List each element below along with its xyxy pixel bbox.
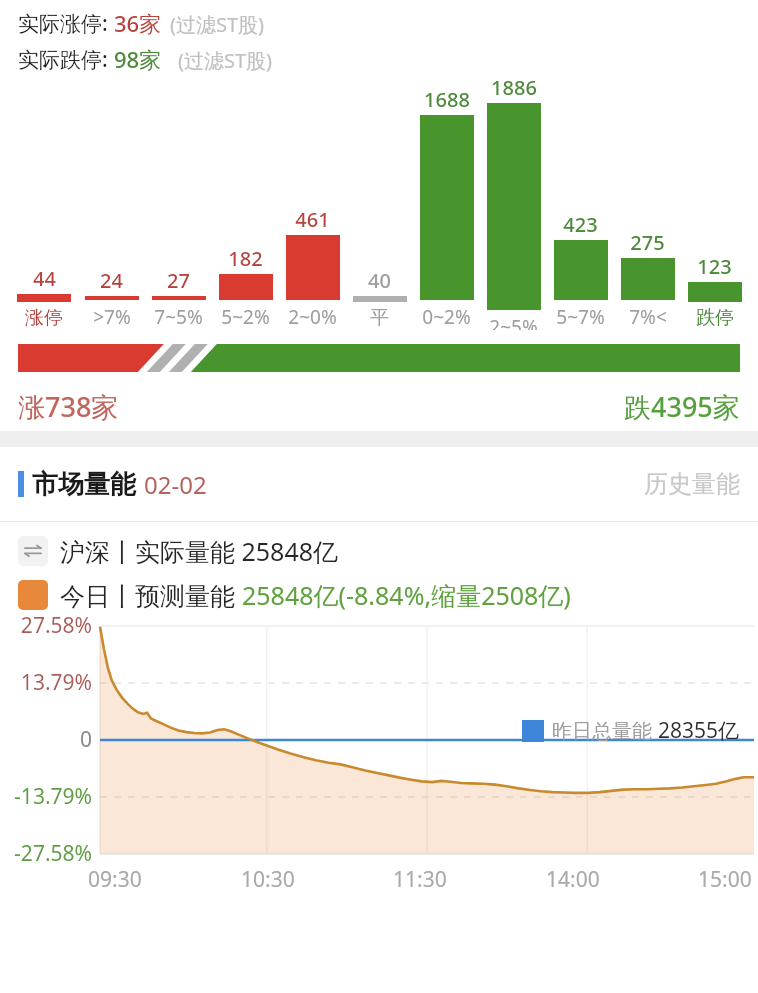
button[interactable] [18,344,740,372]
button[interactable]: 423 [547,211,614,330]
staticText: 123 [697,253,732,280]
staticText: 昨日总量能 [552,717,658,744]
staticText: -13.79% [14,782,92,811]
staticText: 跌停 [696,306,734,330]
staticText: 5~2% [221,304,270,330]
button[interactable]: 275 [614,229,681,330]
button[interactable]: 切换 [18,534,339,568]
staticText: 平 [370,306,389,330]
staticText: 1688 [424,86,470,113]
button[interactable]: 历史量能 [644,469,740,499]
staticText: 5~7% [556,304,605,330]
staticText: 市场量能 [32,468,136,501]
button[interactable]: 182 [212,245,279,330]
button[interactable]: 1886 [480,74,547,330]
button[interactable]: 461 [279,206,346,330]
staticText: 实际跌停: [18,45,108,74]
button[interactable]: 今日丨预测量能 [18,578,571,612]
staticText: 98家 [114,44,162,74]
staticText: 423 [563,211,598,238]
staticText: 历史量能 [644,469,740,499]
staticText: 14:00 [546,865,600,894]
staticText: 13.79% [20,668,92,697]
staticText: 涨停 [25,306,63,330]
button[interactable]: 123 [681,253,748,330]
staticText: 36家 [114,8,162,38]
staticText: 09:30 [88,865,142,894]
staticText: 27 [167,267,190,294]
button[interactable]: 1688 [413,86,480,330]
staticText: 275 [630,229,665,256]
staticText: 02-02 [144,468,207,501]
staticText: 1886 [491,74,537,101]
staticText: (过滤ST股) [170,11,265,38]
staticText: 2~5% [489,314,538,330]
button[interactable]: 24 [78,267,145,330]
staticText: 27.58% [20,611,92,640]
staticText: 涨738家 [18,388,119,425]
staticText: >7% [93,304,131,330]
staticText: 跌4395家 [624,388,740,425]
staticText: 10:30 [241,865,295,894]
staticText: -27.58% [14,839,92,868]
staticText: 实际涨停: [18,9,108,38]
staticText: (过滤ST股) [178,47,273,74]
staticText: 今日丨预测量能 [60,578,242,612]
button[interactable]: 44 [10,265,78,330]
staticText: 0~2% [422,304,471,330]
staticText: 44 [33,265,56,292]
staticText: 11:30 [393,865,447,894]
button[interactable]: 40 [346,267,413,330]
staticText: 7~5% [154,304,203,330]
staticText: 182 [228,245,263,272]
staticText: 28355亿 [658,716,740,745]
staticText: 461 [295,206,330,233]
button[interactable]: 27 [145,267,212,330]
staticText: 25848亿(-8.84%,缩量2508亿) [242,578,571,612]
staticText: 2~0% [288,304,337,330]
staticText: 沪深丨实际量能 25848亿 [60,534,339,568]
staticText: 0 [79,725,92,754]
button[interactable]: 昨日总量能 [522,716,740,745]
other: 切换 [18,536,48,566]
staticText: 24 [100,267,123,294]
staticText: 40 [368,267,391,294]
staticText: 7%< [629,304,667,330]
staticText: 15:00 [698,865,752,894]
